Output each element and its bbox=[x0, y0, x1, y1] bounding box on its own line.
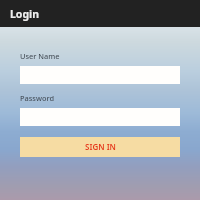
staticText: User Name bbox=[20, 51, 60, 61]
button[interactable]: Login bbox=[0, 0, 200, 27]
staticText: SIGN IN bbox=[85, 141, 116, 152]
staticText: Password bbox=[20, 93, 54, 103]
staticText: Login bbox=[10, 7, 40, 21]
button[interactable]: SIGN IN bbox=[20, 137, 180, 157]
